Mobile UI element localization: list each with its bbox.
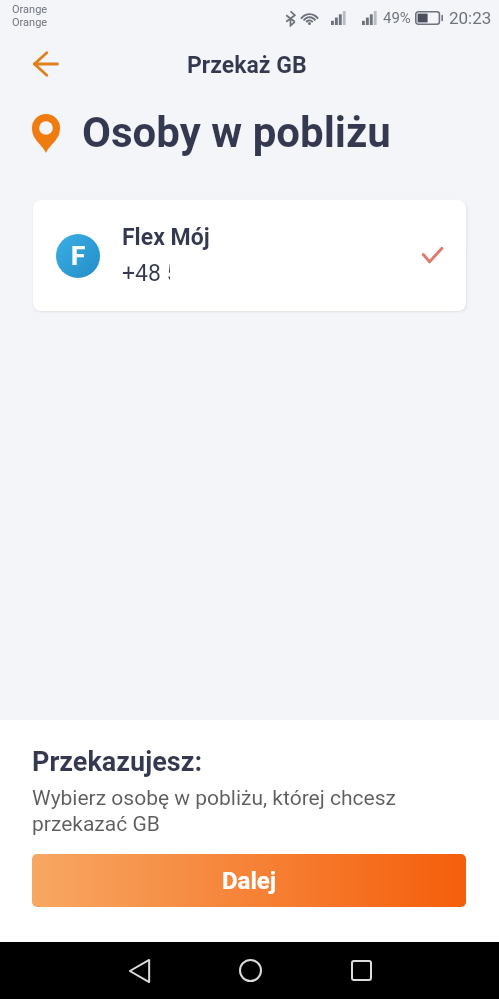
staticText: przekazać GB (32, 812, 160, 837)
staticText: 20:23 (449, 8, 492, 28)
staticText: Flex Mój (122, 224, 210, 251)
staticText: 49% (383, 9, 411, 27)
staticText: F (71, 241, 86, 271)
button[interactable]: Back (19, 38, 71, 90)
button[interactable]: Recents (336, 942, 386, 999)
staticText: Przekazujesz: (32, 746, 203, 778)
button[interactable]: F (33, 200, 466, 311)
staticText: Orange (12, 16, 48, 29)
button[interactable]: Home (225, 942, 275, 999)
staticText: Osoby w pobliżu (82, 108, 391, 157)
staticText: +48 5 (122, 260, 170, 287)
button[interactable]: Dalej (32, 854, 466, 907)
staticText: Dalej (222, 867, 277, 895)
staticText: Orange (12, 3, 48, 16)
button[interactable]: Back (114, 942, 164, 999)
staticText: Przekaż GB (187, 52, 307, 79)
staticText: Wybierz osobę w pobliżu, której chcesz (32, 786, 396, 811)
